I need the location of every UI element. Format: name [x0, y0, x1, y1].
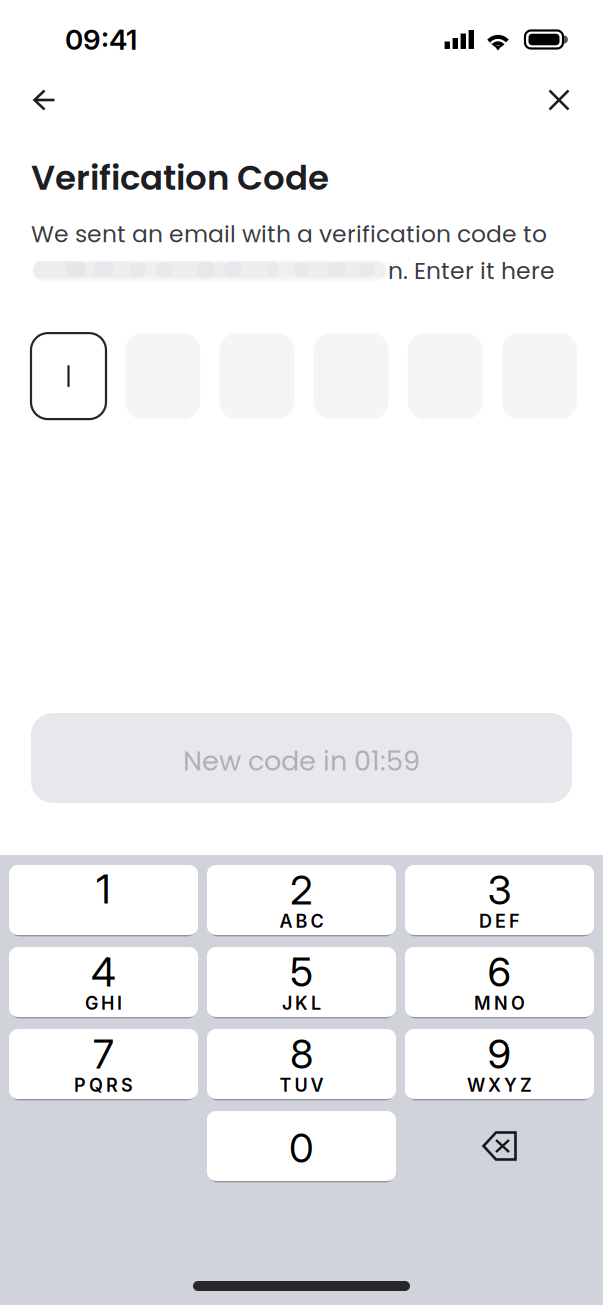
staticText: 2 — [290, 866, 313, 914]
staticText: D E F — [479, 910, 520, 932]
staticText: 0 — [289, 1124, 314, 1172]
staticText: 4 — [91, 948, 116, 996]
staticText: Verification Code — [31, 154, 329, 202]
staticText: M N O — [474, 992, 525, 1014]
button[interactable]: 0 — [207, 1111, 396, 1181]
button[interactable]: 2 — [207, 865, 396, 935]
staticText: T U V — [279, 1074, 323, 1096]
staticText: 7 — [93, 1030, 114, 1078]
staticText: We sent an email with a verification cod… — [31, 218, 547, 250]
staticText: 6 — [487, 948, 511, 996]
button[interactable]: 6 — [405, 947, 594, 1017]
staticText: 3 — [487, 866, 511, 914]
button[interactable]: Close — [534, 75, 584, 125]
button[interactable]: 4 — [9, 947, 198, 1017]
button[interactable]: 1 — [9, 865, 198, 935]
button[interactable]: 9 — [405, 1029, 594, 1099]
button[interactable]: 8 — [207, 1029, 396, 1099]
button[interactable]: 5 — [207, 947, 396, 1017]
staticText: A B C — [279, 910, 323, 932]
button[interactable]: 7 — [9, 1029, 198, 1099]
staticText: 5 — [290, 948, 313, 996]
staticText: P Q R S — [74, 1074, 133, 1096]
staticText: G H I — [85, 992, 122, 1014]
button[interactable]: New code in 01:59 — [31, 713, 572, 803]
button[interactable]: 3 — [405, 865, 594, 935]
staticText: 09:41 — [65, 23, 137, 56]
staticText: New code in 01:59 — [183, 742, 420, 780]
button[interactable]: Delete — [405, 1111, 594, 1181]
staticText: 8 — [290, 1030, 313, 1078]
staticText: W X Y Z — [467, 1074, 532, 1096]
staticText: J K L — [282, 992, 321, 1014]
button[interactable]: Back — [19, 75, 70, 125]
staticText: 9 — [487, 1030, 511, 1078]
staticText: 1 — [96, 865, 111, 913]
staticText: n. Enter it here — [388, 254, 555, 287]
